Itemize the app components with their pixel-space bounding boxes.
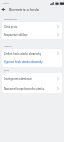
staticText: Změnit heslo zámku obrazovky: [4, 52, 57, 55]
staticText: Inteligentní odemknutí: [4, 77, 57, 80]
staticText: HESLO: [4, 44, 12, 47]
staticText: JINÉ: [4, 68, 9, 71]
staticText: BIOMETRIE: [4, 17, 17, 20]
button[interactable]: Vypnout heslo zámku obrazovky: [2, 58, 62, 67]
button[interactable]: Rozpoznání obličeje: [2, 30, 62, 39]
button[interactable]: Změnit heslo zámku obrazovky: [2, 49, 62, 58]
staticText: Biometrie a hesla: [9, 7, 39, 12]
button[interactable]: Back: [1, 7, 6, 12]
button[interactable]: Nastavení bezpečnostního zámku: [2, 83, 62, 93]
staticText: Rozpoznání obličeje: [4, 33, 57, 36]
staticText: 13:21: [3, 2, 9, 5]
button[interactable]: Otisk prstu: [2, 22, 62, 30]
button[interactable]: Inteligentní odemknutí: [2, 73, 62, 83]
staticText: Vypnout heslo zámku obrazovky: [4, 60, 59, 63]
staticText: Nastavení bezpečnostního zámku: [4, 87, 57, 90]
staticText: Otisk prstu: [4, 25, 57, 28]
